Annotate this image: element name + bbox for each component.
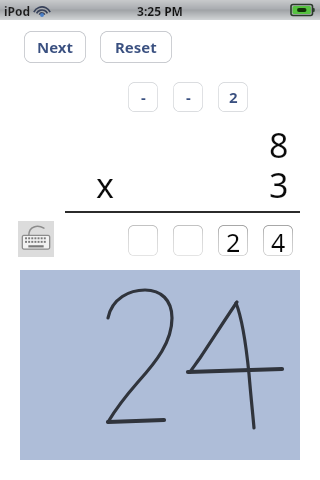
staticText: 4 [271,225,286,256]
button[interactable]: Show keyboard [18,221,54,257]
staticText: - [141,87,146,107]
staticText: - [186,87,191,107]
staticText: iPod [4,3,31,19]
staticText: 3 [269,162,289,204]
button[interactable]: - [173,82,203,112]
button[interactable]: 2 [218,225,248,256]
staticText: 2 [226,225,241,256]
button[interactable]: 4 [263,225,293,256]
staticText: 8 [269,122,289,164]
staticText: 3:25 PM [0,3,320,19]
staticText: x [96,162,114,204]
button[interactable]: Next [24,31,86,63]
button[interactable]: Reset [100,31,172,63]
button[interactable]: Empty answer digit [128,225,158,256]
button[interactable]: - [128,82,158,112]
button[interactable]: Empty answer digit [173,225,203,256]
button[interactable]: 2 [218,82,248,112]
staticText: 2 [229,87,238,107]
staticText: Reset [115,37,157,57]
staticText: Next [37,37,74,57]
button[interactable]: Handwriting area [20,270,300,460]
